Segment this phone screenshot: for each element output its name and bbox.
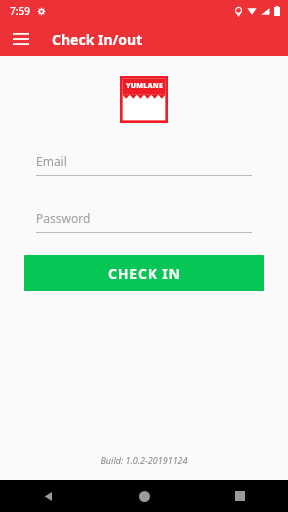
staticText: CHECK IN <box>108 264 181 283</box>
staticText: Email <box>36 153 67 169</box>
button[interactable]: Open navigation menu <box>6 24 36 54</box>
staticText: Check In/out <box>52 30 143 49</box>
button[interactable]: CHECK IN <box>24 255 264 291</box>
staticText: Password <box>36 210 91 226</box>
button[interactable]: Recent apps <box>192 480 288 512</box>
button[interactable]: Back <box>0 480 96 512</box>
button[interactable]: Password <box>36 210 252 233</box>
button[interactable]: Home <box>96 480 192 512</box>
staticText: Build: 1.0.2-20191124 <box>100 454 188 466</box>
staticText: YUMLANE <box>126 81 163 91</box>
button[interactable]: Email <box>36 153 252 176</box>
staticText: 7:59 <box>10 4 30 18</box>
